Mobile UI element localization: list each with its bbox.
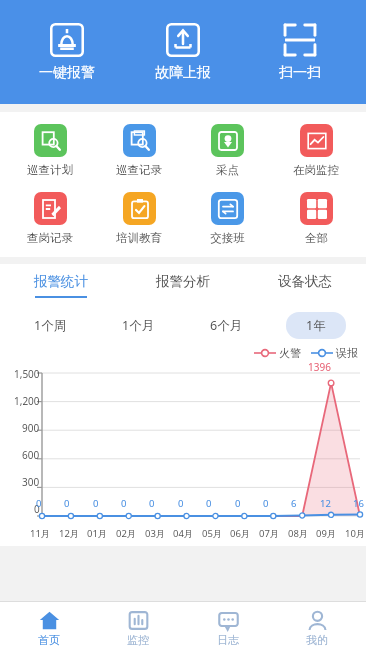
staticText: 巡查记录	[116, 163, 162, 177]
button[interactable]: 1个月	[102, 312, 175, 339]
staticText: 交接班	[210, 231, 245, 245]
staticText: 03月	[145, 527, 166, 540]
button[interactable]: 监控	[98, 606, 178, 651]
staticText: 监控	[127, 633, 149, 647]
staticText: 0	[121, 497, 127, 510]
button[interactable]: 1年	[286, 312, 346, 339]
staticText: 日志	[217, 633, 239, 647]
staticText: 09月	[316, 527, 337, 540]
staticText: 600	[22, 448, 40, 462]
button[interactable]: 首页	[9, 606, 89, 651]
staticText: 1396	[308, 360, 331, 374]
button[interactable]: 报警分析	[122, 264, 244, 306]
button[interactable]: 故障上报	[133, 19, 233, 86]
staticText: 采点	[216, 163, 239, 177]
staticText: 0	[149, 497, 155, 510]
button[interactable]: 一键报警	[17, 19, 117, 86]
staticText: 0	[235, 497, 241, 510]
staticText: 0	[93, 497, 99, 510]
staticText: 08月	[288, 527, 309, 540]
staticText: 02月	[116, 527, 137, 540]
staticText: 我的	[306, 633, 328, 647]
staticText: 1年	[306, 317, 326, 334]
button[interactable]: 巡查记录	[100, 122, 178, 179]
staticText: 05月	[202, 527, 223, 540]
staticText: 全部	[305, 231, 328, 245]
staticText: 故障上报	[155, 64, 211, 82]
staticText: 1,200	[14, 394, 40, 408]
button[interactable]: 交接班	[188, 190, 266, 247]
button[interactable]: 培训教育	[100, 190, 178, 247]
staticText: 1,500	[14, 367, 40, 381]
staticText: 16	[353, 497, 364, 510]
staticText: 12月	[59, 527, 80, 540]
staticText: 扫一扫	[279, 64, 321, 82]
button[interactable]: 设备状态	[244, 264, 366, 306]
staticText: 0	[206, 497, 212, 510]
staticText: 6个月	[210, 317, 243, 334]
staticText: 设备状态	[278, 273, 332, 290]
staticText: 01月	[87, 527, 108, 540]
button[interactable]: 扫一扫	[250, 19, 350, 86]
staticText: 10月	[345, 527, 366, 540]
staticText: 巡查计划	[27, 163, 73, 177]
staticText: 误报	[336, 346, 358, 360]
button[interactable]: 报警统计	[0, 264, 122, 306]
staticText: 报警统计	[34, 273, 88, 290]
staticText: 首页	[38, 633, 60, 647]
staticText: 12	[320, 497, 331, 510]
staticText: 报警分析	[156, 273, 210, 290]
button[interactable]: 在岗监控	[277, 122, 355, 179]
staticText: 11月	[30, 527, 51, 540]
button[interactable]: 查岗记录	[11, 190, 89, 247]
staticText: 0	[34, 502, 40, 516]
staticText: 一键报警	[39, 64, 95, 82]
staticText: 04月	[173, 527, 194, 540]
button[interactable]: 日志	[188, 606, 268, 651]
staticText: 1个月	[122, 317, 155, 334]
staticText: 900	[22, 421, 40, 435]
staticText: 1个周	[34, 317, 67, 334]
staticText: 06月	[230, 527, 251, 540]
staticText: 07月	[259, 527, 280, 540]
button[interactable]: 我的	[277, 606, 357, 651]
button[interactable]: 采点	[188, 122, 266, 179]
staticText: 0	[64, 497, 70, 510]
button[interactable]: 巡查计划	[11, 122, 89, 179]
button[interactable]: 全部	[277, 190, 355, 247]
staticText: 火警	[279, 346, 301, 360]
staticText: 在岗监控	[293, 163, 339, 177]
button[interactable]: 6个月	[190, 312, 263, 339]
staticText: 0	[263, 497, 269, 510]
staticText: 查岗记录	[27, 231, 73, 245]
staticText: 300	[22, 475, 40, 489]
staticText: 0	[36, 497, 42, 510]
button[interactable]: 1个周	[14, 312, 87, 339]
staticText: 0	[178, 497, 184, 510]
staticText: 培训教育	[116, 231, 162, 245]
staticText: 6	[291, 497, 297, 510]
